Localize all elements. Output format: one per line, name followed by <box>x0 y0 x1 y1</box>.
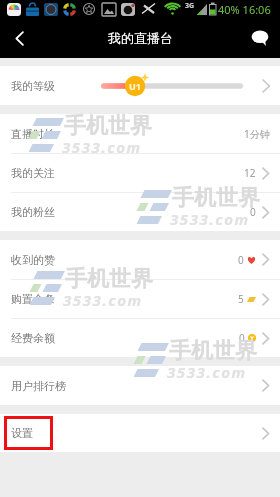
button[interactable]: 收到的赞 <box>0 240 280 279</box>
button[interactable]: 直播时长 <box>0 114 280 153</box>
staticText: 我的粉丝 <box>11 205 55 219</box>
button[interactable]: 经费余额 <box>0 319 280 357</box>
button[interactable]: 用户排行榜 <box>0 366 280 405</box>
staticText: 手机世界 <box>65 265 153 293</box>
staticText: 3533.com <box>170 209 250 229</box>
staticText: 3533.com <box>167 362 247 382</box>
staticText: 我的关注 <box>11 166 55 180</box>
button[interactable]: 购置金条 <box>0 280 280 318</box>
staticText: 我的直播台 <box>108 30 173 46</box>
staticText: 1分钟 <box>244 127 270 141</box>
staticText: 3533.com <box>62 137 142 157</box>
staticText: 3G <box>185 1 195 11</box>
button[interactable]: Back <box>0 18 38 58</box>
button[interactable]: 设置 <box>0 414 280 452</box>
staticText: 5 <box>238 292 244 306</box>
staticText: U1 <box>129 80 141 92</box>
staticText: 手机世界 <box>169 337 257 365</box>
staticText: 0 <box>250 205 256 219</box>
staticText: 用户排行榜 <box>11 379 66 393</box>
staticText: 0 <box>239 331 245 345</box>
button[interactable]: 我的等级 <box>0 66 280 105</box>
staticText: 0 <box>238 253 244 267</box>
staticText: 手机世界 <box>172 184 260 212</box>
staticText: 我的等级 <box>11 79 55 93</box>
staticText: 手机世界 <box>64 112 152 140</box>
button[interactable]: 我的粉丝 <box>0 193 280 231</box>
staticText: 设置 <box>11 426 33 440</box>
staticText: 3533.com <box>63 290 143 310</box>
staticText: 直播时长 <box>11 127 55 141</box>
staticText: 收到的赞 <box>11 253 55 267</box>
staticText: 经费余额 <box>11 331 55 345</box>
staticText: 12 <box>244 166 256 180</box>
button[interactable]: Messages <box>240 18 280 58</box>
button[interactable]: 我的关注 <box>0 154 280 192</box>
staticText: 40% 16:06 <box>218 2 271 17</box>
staticText: 购置金条 <box>11 292 55 306</box>
